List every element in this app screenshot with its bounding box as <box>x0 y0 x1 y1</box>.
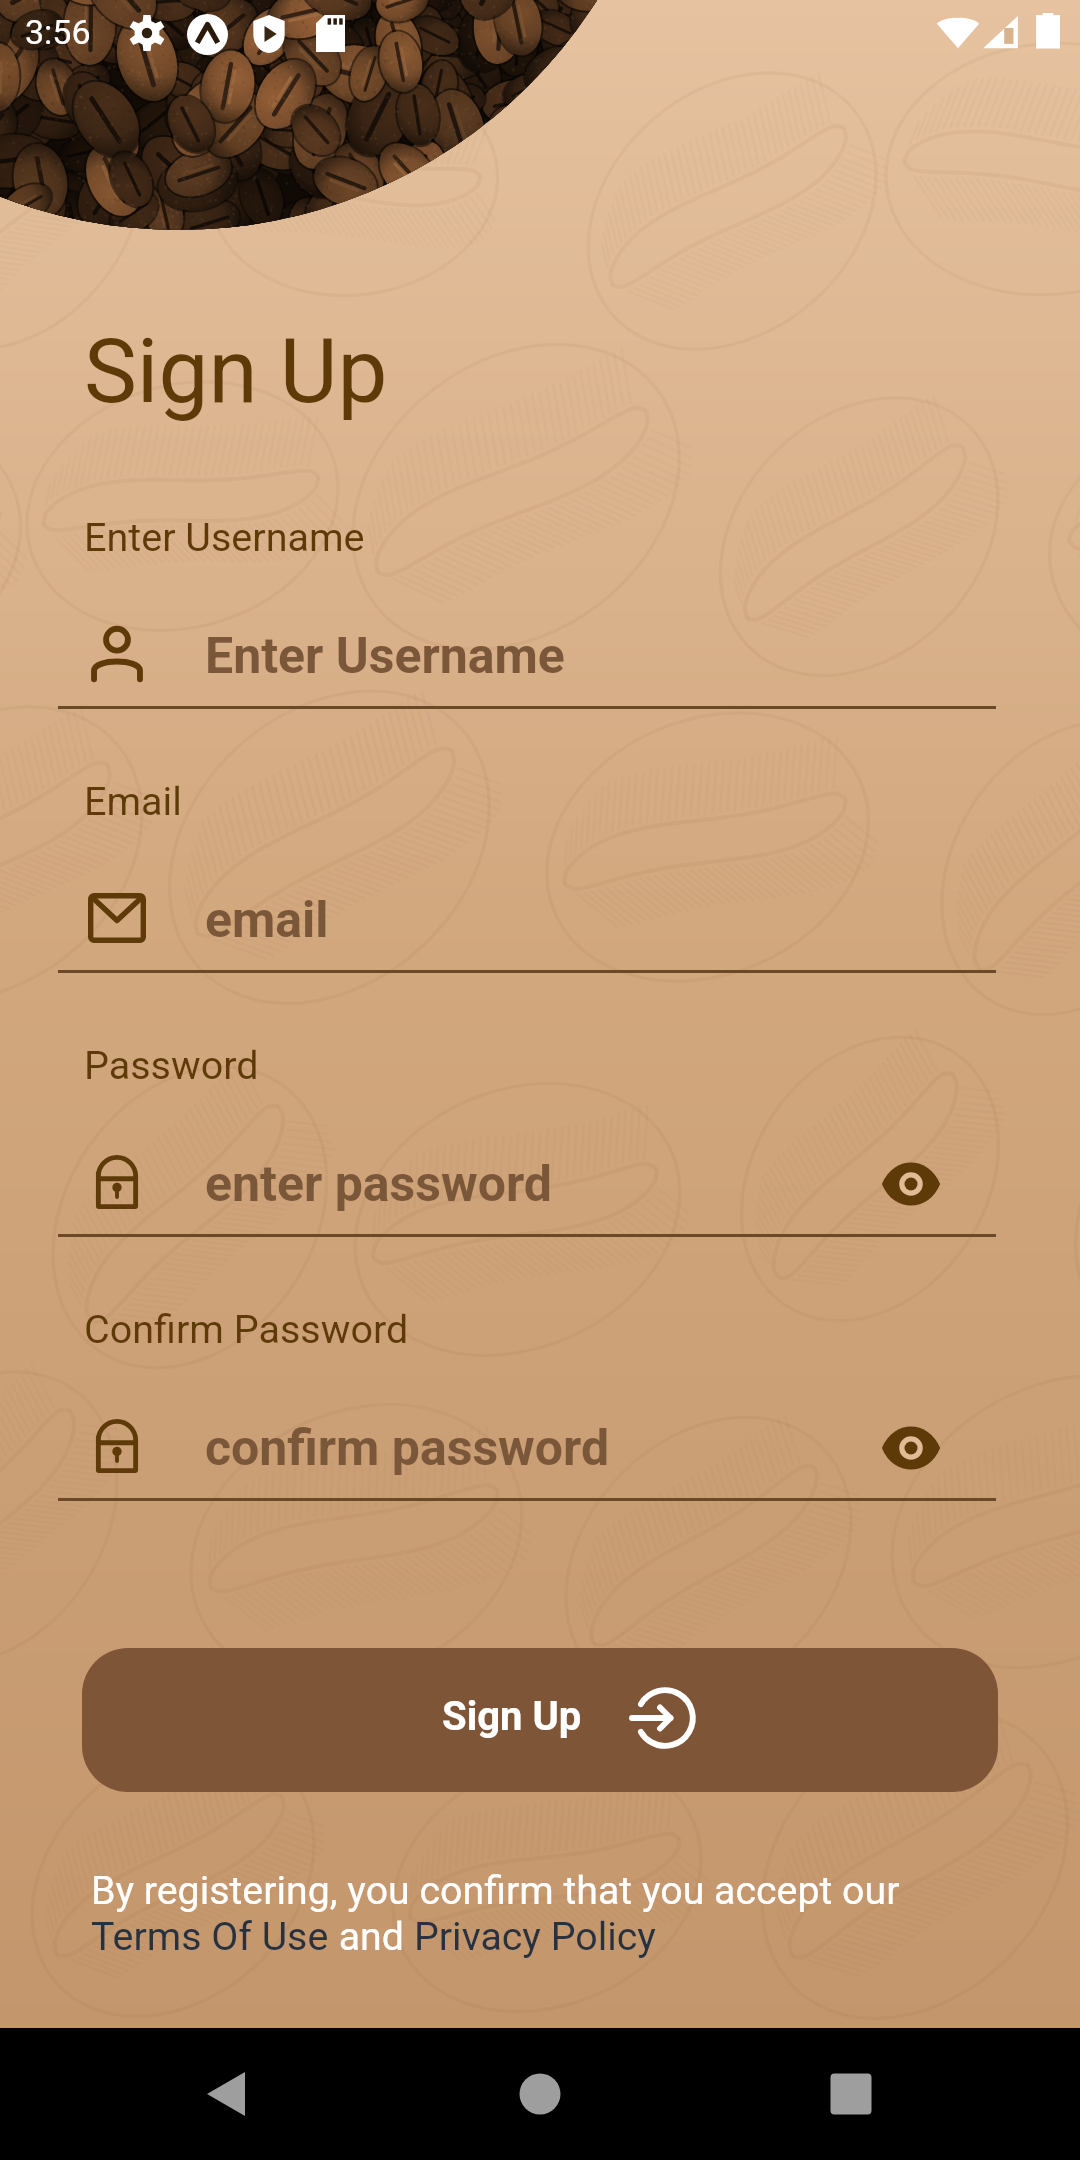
staticText: email <box>205 891 329 950</box>
button[interactable]: enter password <box>58 1130 998 1238</box>
staticText: By registering, you confirm that you acc… <box>91 1868 900 1914</box>
button[interactable]: Terms Of Use <box>91 1914 329 1960</box>
staticText: Enter Username <box>84 514 365 560</box>
staticText: Confirm Password <box>84 1306 409 1352</box>
staticText: Enter Username <box>205 627 565 686</box>
staticText: Password <box>84 1042 259 1088</box>
button[interactable]: Show password <box>876 1413 946 1483</box>
button[interactable]: confirm password <box>58 1394 998 1502</box>
button[interactable]: email <box>58 866 998 974</box>
button[interactable]: Show password <box>876 1149 946 1219</box>
button[interactable]: Privacy Policy <box>414 1914 656 1960</box>
staticText: Sign Up <box>84 319 388 423</box>
staticText: 3:56 <box>25 12 91 52</box>
staticText: and <box>329 1914 414 1960</box>
staticText: confirm password <box>205 1419 610 1478</box>
staticText: Email <box>84 778 182 824</box>
button[interactable]: Sign Up <box>82 1648 998 1792</box>
staticText: Sign Up <box>442 1693 582 1740</box>
button[interactable]: Enter Username <box>58 602 998 710</box>
staticText: enter password <box>205 1155 552 1214</box>
